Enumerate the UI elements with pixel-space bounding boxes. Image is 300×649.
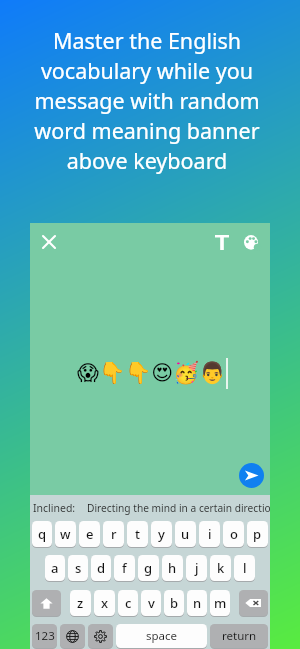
staticText: e <box>86 525 94 543</box>
staticText: r <box>111 525 117 543</box>
staticText: t <box>135 525 140 543</box>
button[interactable]: v <box>141 590 161 617</box>
button[interactable]: b <box>164 590 184 617</box>
button[interactable]: q <box>32 521 52 548</box>
button[interactable]: a <box>45 555 65 582</box>
staticText: a <box>51 559 59 577</box>
button[interactable]: m <box>210 590 230 617</box>
button[interactable]: t <box>127 521 148 548</box>
staticText: 123 <box>35 628 55 644</box>
button[interactable]: y <box>151 521 172 548</box>
staticText: z <box>77 594 84 612</box>
staticText: m <box>214 594 227 612</box>
staticText: b <box>170 594 179 612</box>
button[interactable]: c <box>118 590 138 617</box>
button[interactable]: j <box>186 555 207 582</box>
button[interactable]: space <box>116 624 207 649</box>
button[interactable]: o <box>223 521 244 548</box>
staticText: Directing the mind in a certain directio… <box>87 501 270 515</box>
button[interactable]: n <box>187 590 207 617</box>
button[interactable]: l <box>234 555 255 582</box>
button[interactable]: Text style <box>211 231 233 253</box>
staticText: l <box>243 559 247 577</box>
button[interactable]: f <box>114 555 135 582</box>
button[interactable]: w <box>55 521 76 548</box>
button[interactable]: Language <box>60 624 85 649</box>
staticText: n <box>193 594 202 612</box>
button[interactable]: e <box>79 521 100 548</box>
staticText: u <box>181 525 190 543</box>
staticText: space <box>146 628 178 644</box>
staticText: p <box>253 525 262 543</box>
staticText: k <box>217 559 225 577</box>
button[interactable]: x <box>94 590 115 617</box>
button[interactable]: r <box>103 521 124 548</box>
button[interactable]: h <box>162 555 183 582</box>
button[interactable]: s <box>68 555 88 582</box>
staticText: d <box>97 559 106 577</box>
button[interactable]: p <box>247 521 268 548</box>
button[interactable]: Backspace <box>239 590 268 617</box>
staticText: v <box>148 594 155 612</box>
staticText: c <box>125 594 132 612</box>
button[interactable]: Send <box>239 463 264 488</box>
button[interactable]: k <box>210 555 231 582</box>
staticText: q <box>38 525 47 543</box>
staticText: s <box>75 559 82 577</box>
staticText: Inclined: <box>33 501 76 515</box>
button[interactable]: i <box>199 521 220 548</box>
staticText: 😱👇👇😍🥳👨 <box>77 361 226 386</box>
staticText: w <box>60 525 71 543</box>
staticText: y <box>158 525 165 543</box>
button[interactable]: u <box>175 521 196 548</box>
staticText: return <box>222 628 257 644</box>
button[interactable]: d <box>91 555 111 582</box>
button[interactable]: 123 <box>32 624 57 649</box>
button[interactable]: return <box>210 624 268 649</box>
staticText: h <box>168 559 177 577</box>
button[interactable]: Close <box>36 229 62 255</box>
button[interactable]: g <box>138 555 159 582</box>
staticText: x <box>101 594 109 612</box>
staticText: Master the English vocabulary while you … <box>0 26 294 175</box>
staticText: f <box>122 559 127 577</box>
button[interactable]: Theme <box>240 231 262 253</box>
staticText: g <box>144 559 153 577</box>
staticText: o <box>230 525 238 543</box>
staticText: j <box>195 559 199 577</box>
button[interactable]: Settings <box>88 624 113 649</box>
button[interactable]: Shift <box>32 590 61 617</box>
button[interactable]: z <box>70 590 91 617</box>
staticText: i <box>208 525 212 543</box>
